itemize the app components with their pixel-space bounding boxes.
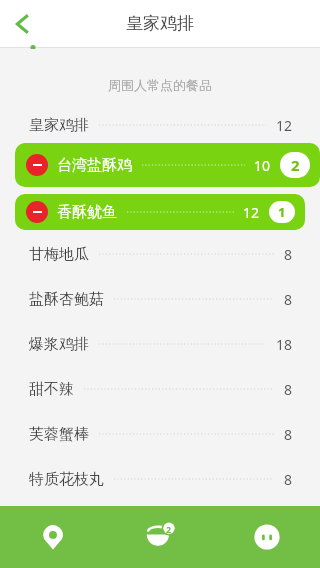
button[interactable]: Cart, 2 items — [106, 506, 213, 568]
button[interactable]: 爆浆鸡排 — [0, 332, 320, 356]
button[interactable]: 芙蓉蟹棒 — [0, 422, 320, 446]
button[interactable]: Back — [0, 1, 46, 47]
button[interactable]: 盐酥杏鲍菇 — [0, 287, 320, 311]
staticText: 12 — [243, 203, 260, 222]
staticText: 爆浆鸡排 — [29, 335, 89, 354]
button[interactable]: Remove 香酥鱿鱼 — [26, 201, 48, 223]
staticText: 香酥鱿鱼 — [57, 203, 117, 222]
staticText: 周围人常点的餐品 — [0, 77, 320, 93]
button[interactable]: 甘梅地瓜 — [0, 242, 320, 266]
staticText: 芙蓉蟹棒 — [29, 425, 89, 444]
button[interactable]: Profile — [213, 506, 320, 568]
button[interactable]: Remove 香酥鱿鱼 — [15, 194, 305, 230]
staticText: 皇家鸡排 — [29, 116, 89, 135]
staticText: 8 — [284, 380, 293, 399]
button[interactable]: 皇家鸡排 — [0, 113, 320, 137]
button[interactable]: Remove 台湾盐酥鸡 — [26, 154, 48, 176]
staticText: 皇家鸡排 — [126, 13, 194, 34]
staticText: 1 — [278, 203, 286, 221]
staticText: 甘梅地瓜 — [29, 245, 89, 264]
staticText: 10 — [254, 156, 271, 175]
staticText: 8 — [284, 425, 293, 444]
staticText: 8 — [284, 245, 293, 264]
staticText: 盐酥杏鲍菇 — [29, 290, 104, 309]
staticText: 8 — [284, 290, 293, 309]
button[interactable]: Remove 台湾盐酥鸡 — [15, 143, 320, 187]
staticText: 特质花枝丸 — [29, 470, 104, 489]
staticText: 台湾盐酥鸡 — [57, 156, 132, 175]
staticText: 18 — [276, 335, 293, 354]
button[interactable]: 甜不辣 — [0, 377, 320, 401]
staticText: 12 — [276, 116, 293, 135]
staticText: 2 — [291, 155, 300, 175]
button[interactable]: 特质花枝丸 — [0, 467, 320, 491]
staticText: 甜不辣 — [29, 380, 74, 399]
staticText: 8 — [284, 470, 293, 489]
button[interactable]: Location — [0, 506, 106, 568]
staticText: 2 — [166, 523, 172, 535]
